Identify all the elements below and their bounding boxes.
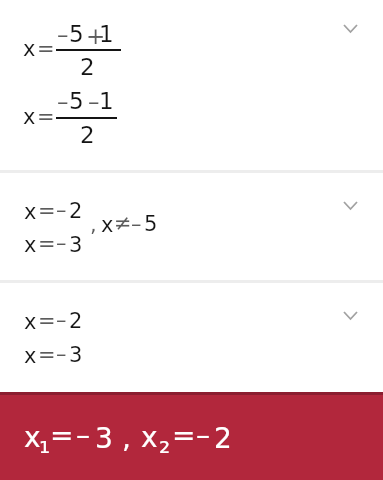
staticText: x [24, 421, 41, 454]
staticText: x [24, 344, 37, 368]
button[interactable]: x [0, 0, 383, 171]
staticText: – [57, 22, 69, 49]
staticText: – [196, 419, 210, 452]
staticText: 1 [99, 88, 114, 115]
staticText: = [38, 309, 56, 333]
staticText: x [101, 213, 114, 237]
button[interactable]: Collapse step [328, 293, 372, 337]
staticText: – [131, 212, 142, 236]
staticText: 3 [95, 422, 113, 455]
staticText: 2 [80, 122, 95, 149]
staticText: 3 [69, 343, 83, 367]
staticText: 5 [69, 88, 84, 115]
staticText: 5 [144, 212, 158, 236]
staticText: – [56, 231, 67, 255]
staticText: x [23, 37, 36, 61]
staticText: – [57, 89, 69, 116]
staticText: – [76, 419, 90, 452]
staticText: ≠ [114, 211, 132, 235]
staticText: = [172, 419, 196, 452]
staticText: – [56, 198, 67, 222]
staticText: 3 [69, 233, 83, 257]
staticText: 1 [99, 21, 114, 48]
staticText: – [56, 308, 67, 332]
staticText: – [88, 89, 100, 116]
staticText: = [38, 343, 56, 367]
staticText: = [38, 232, 56, 256]
staticText: , [122, 422, 131, 455]
staticText: ₁ [39, 427, 51, 460]
staticText: = [38, 199, 56, 223]
staticText: x [24, 200, 37, 224]
staticText: 5 [69, 21, 84, 48]
staticText: x [141, 421, 158, 454]
button[interactable]: x [0, 173, 383, 281]
button[interactable]: x [0, 283, 383, 392]
staticText: x [23, 105, 36, 129]
staticText: 2 [69, 199, 83, 223]
staticText: 2 [214, 422, 232, 455]
staticText: x [24, 233, 37, 257]
staticText: = [37, 37, 55, 61]
staticText: + [86, 23, 106, 50]
staticText: , [90, 213, 97, 237]
button[interactable]: Collapse step [328, 6, 372, 50]
staticText: – [56, 342, 67, 366]
staticText: ₂ [159, 427, 171, 460]
staticText: = [50, 419, 74, 452]
button[interactable]: Collapse step [328, 183, 372, 227]
staticText: 2 [69, 309, 83, 333]
staticText: x [24, 310, 37, 334]
staticText: 2 [80, 54, 95, 81]
button[interactable]: x [0, 392, 383, 480]
staticText: = [37, 105, 55, 129]
